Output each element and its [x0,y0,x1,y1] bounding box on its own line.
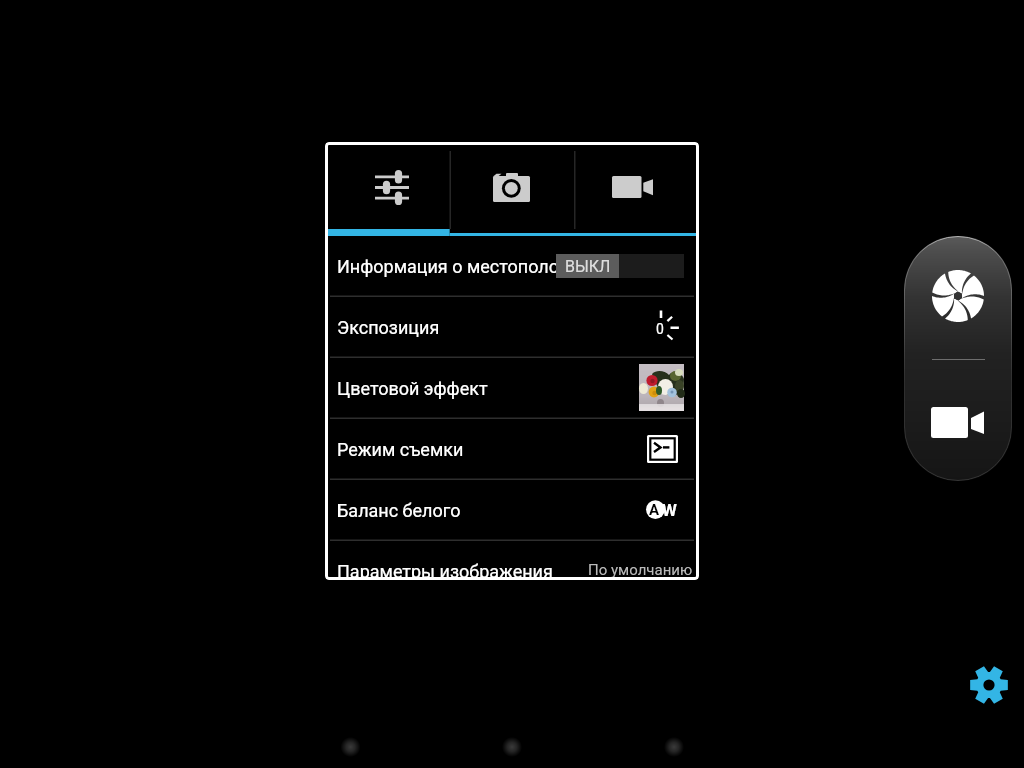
staticText: ВЫКЛ [565,257,611,276]
button[interactable]: Location info: off [556,254,684,278]
staticText: Экспозиция [337,317,440,338]
staticText: По умолчанию [588,561,693,579]
button[interactable]: Colour effect: none [639,364,684,411]
button[interactable]: Параметры изображения [325,541,699,580]
button[interactable]: Экспозиция [325,297,699,358]
button[interactable]: Баланс белого [325,480,699,541]
button[interactable]: White balance: auto [646,500,678,520]
staticText: Режим съемки [337,439,464,460]
button[interactable]: Record video [904,360,1012,481]
staticText: W [662,500,677,520]
staticText: Цветовой эффект [337,378,488,399]
button[interactable]: Информация о местоположении [325,236,699,297]
button[interactable]: Settings [963,659,1015,711]
staticText: Баланс белого [337,500,461,521]
button[interactable]: Режим съемки [325,419,699,480]
staticText: A [649,501,660,519]
button[interactable]: General settings [325,142,449,228]
staticText: 0 [656,321,664,337]
staticText: Информация о местоположении [337,256,614,277]
staticText: Параметры изображения [337,561,553,580]
button[interactable]: Exposure: 0 [656,309,682,343]
button[interactable]: Camera settings [449,142,574,228]
button[interactable]: Video settings [574,142,699,228]
button[interactable]: Scene mode [647,435,678,463]
button[interactable]: Цветовой эффект [325,358,699,419]
button[interactable]: Shutter [904,236,1012,356]
